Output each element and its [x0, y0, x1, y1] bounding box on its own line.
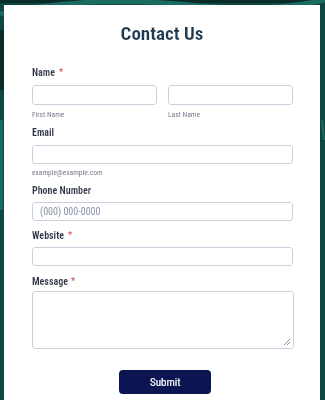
button[interactable]	[168, 85, 293, 105]
button[interactable]	[32, 145, 293, 164]
staticText: *	[71, 276, 76, 287]
staticText: Contact Us	[4, 22, 320, 44]
staticText: Name	[32, 67, 56, 79]
staticText: Email	[32, 127, 55, 139]
button[interactable]	[32, 247, 293, 266]
button[interactable]: (000) 000-0000	[32, 202, 293, 221]
staticText: *	[59, 67, 64, 78]
staticText: example@example.com	[32, 168, 103, 177]
staticText: *	[68, 230, 73, 241]
button[interactable]	[32, 85, 157, 105]
staticText: Submit	[150, 376, 181, 389]
staticText: First Name	[32, 110, 65, 119]
button[interactable]: Submit	[119, 370, 211, 394]
staticText: (000) 000-0000	[40, 206, 101, 218]
staticText: Website	[32, 230, 65, 242]
staticText: Phone Number	[32, 185, 92, 197]
staticText: Message	[32, 276, 68, 288]
button[interactable]	[32, 291, 294, 349]
staticText: Last Name	[168, 110, 200, 119]
